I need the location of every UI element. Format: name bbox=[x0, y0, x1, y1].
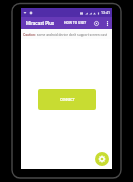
staticText: some android device don't support screen… bbox=[36, 33, 108, 37]
staticText: HOW TO USE? bbox=[64, 21, 87, 25]
button[interactable]: Settings bbox=[95, 152, 109, 166]
staticText: CONNECT bbox=[60, 98, 75, 102]
staticText: 13:41 bbox=[101, 11, 110, 15]
staticText: Miracast Plus bbox=[26, 21, 55, 26]
button[interactable]: More options bbox=[103, 19, 111, 27]
staticText: Caution: bbox=[23, 33, 36, 37]
button[interactable]: HOW TO USE? bbox=[63, 19, 88, 27]
button[interactable]: Help bbox=[92, 19, 100, 27]
button[interactable]: CONNECT bbox=[38, 89, 96, 110]
